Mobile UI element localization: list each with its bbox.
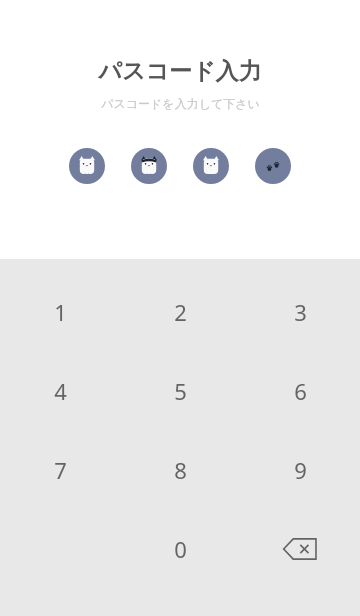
button[interactable]: Backspace <box>240 509 360 588</box>
button[interactable]: 1 <box>0 272 120 351</box>
staticText: 9 <box>294 455 307 485</box>
staticText: 0 <box>174 534 187 564</box>
button[interactable]: 0 <box>120 509 240 588</box>
button[interactable]: 4 <box>0 351 120 430</box>
staticText: 8 <box>174 455 187 485</box>
staticText: パスコードを入力して下さい <box>101 96 260 111</box>
staticText: 7 <box>54 455 67 485</box>
button[interactable]: Passcode digit 1 <box>69 148 105 184</box>
button[interactable]: 5 <box>120 351 240 430</box>
button[interactable]: 9 <box>240 430 360 509</box>
staticText: 6 <box>294 376 307 406</box>
button[interactable]: Passcode digit 3 <box>193 148 229 184</box>
button[interactable]: 2 <box>120 272 240 351</box>
staticText: 1 <box>54 297 67 327</box>
staticText: パスコード入力 <box>98 57 262 86</box>
button[interactable]: 8 <box>120 430 240 509</box>
button[interactable]: 3 <box>240 272 360 351</box>
staticText: 5 <box>174 376 187 406</box>
button[interactable]: 7 <box>0 430 120 509</box>
button[interactable]: 6 <box>240 351 360 430</box>
button[interactable]: Passcode digit 2 <box>131 148 167 184</box>
button[interactable]: Passcode digit 4 <box>255 148 291 184</box>
staticText: 2 <box>174 297 187 327</box>
staticText: 3 <box>294 297 307 327</box>
staticText: 4 <box>54 376 67 406</box>
